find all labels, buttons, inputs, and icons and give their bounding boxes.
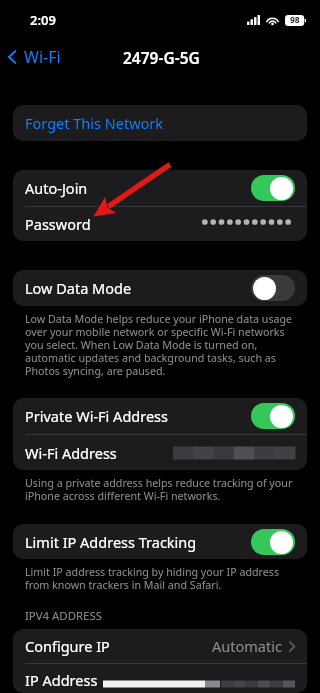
staticText: 98 [290,14,300,26]
staticText: Automatic [212,636,282,656]
staticText: Wi-Fi Address [25,443,117,463]
staticText: Wi-Fi [24,46,61,68]
button[interactable]: Auto-Join [13,170,307,206]
staticText: Limit IP Address Tracking [25,532,197,552]
button[interactable]: Wi-Fi [0,43,69,71]
button[interactable]: On [251,175,295,201]
staticText: Limit IP address tracking by hiding your… [25,565,293,592]
button[interactable]: Forget This Network [13,105,307,141]
button[interactable]: Low Data Mode [13,270,307,306]
staticText: Using a private address helps reduce tra… [25,476,293,503]
staticText: Low Data Mode helps reduce your iPhone d… [25,312,293,378]
staticText: IP Address [25,670,98,690]
button[interactable]: Off [251,275,295,301]
button[interactable]: Wi-Fi Address [13,435,307,470]
staticText: Low Data Mode [25,278,132,298]
staticText: Password [25,214,91,234]
button[interactable]: On [251,529,295,555]
button[interactable]: Limit IP Address Tracking [13,524,307,559]
staticText: Private Wi-Fi Address [25,406,168,426]
button[interactable]: Password [13,207,307,241]
button[interactable]: Configure IP [13,629,307,663]
staticText: Configure IP [25,636,110,656]
staticText: Forget This Network [25,113,164,133]
staticText: 2479-G-5G [123,47,200,68]
staticText: Auto-Join [25,178,88,198]
staticText: IPV4 ADDRESS [25,608,102,624]
button[interactable]: IP Address [13,664,307,693]
button[interactable]: On [251,403,295,429]
button[interactable]: Private Wi-Fi Address [13,398,307,434]
staticText: 2:09 [30,11,56,29]
